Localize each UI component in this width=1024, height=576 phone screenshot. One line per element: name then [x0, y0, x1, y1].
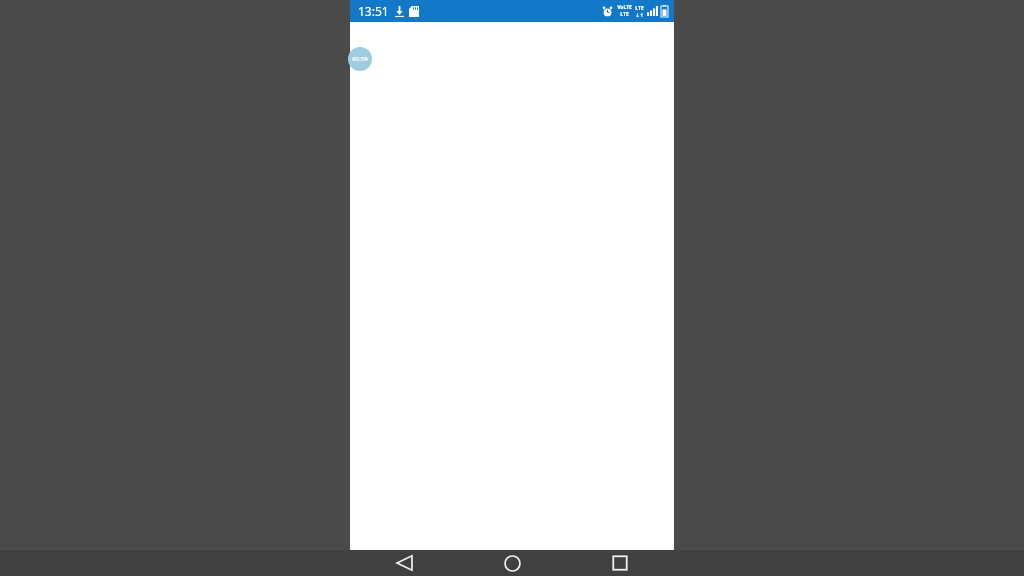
staticText: 13:51 — [358, 3, 389, 19]
button[interactable]: Back — [350, 550, 458, 576]
staticText: 00:59 — [352, 55, 368, 63]
button[interactable]: 00:59 — [348, 47, 372, 71]
button[interactable]: Recent apps — [566, 550, 674, 576]
button[interactable]: Home — [458, 550, 566, 576]
staticText: VoLTE — [617, 4, 632, 11]
staticText: ↓↑ — [635, 12, 644, 18]
staticText: LTE — [620, 11, 629, 18]
staticText: LTE — [635, 5, 644, 12]
